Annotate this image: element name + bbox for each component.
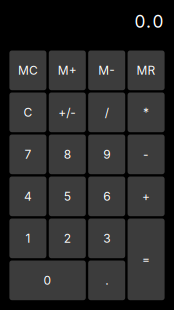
button[interactable]: Plus minus (49, 92, 86, 132)
button[interactable]: 0 (9, 260, 86, 300)
staticText: MC (18, 63, 38, 78)
staticText: = (142, 252, 150, 267)
button[interactable]: 6 (88, 176, 125, 216)
staticText: 5 (64, 189, 71, 204)
staticText: 3 (103, 231, 110, 246)
button[interactable]: 1 (9, 218, 46, 258)
staticText: +/- (58, 105, 76, 120)
button[interactable]: 4 (9, 176, 46, 216)
button[interactable]: Divide (88, 92, 125, 132)
button[interactable]: 3 (88, 218, 125, 258)
staticText: 6 (103, 189, 110, 204)
staticText: . (105, 273, 108, 288)
staticText: 8 (64, 147, 71, 162)
button[interactable]: Memory add (49, 50, 86, 90)
staticText: M- (98, 63, 115, 78)
staticText: 4 (24, 189, 32, 204)
staticText: 1 (25, 231, 30, 246)
button[interactable]: Equals (128, 218, 165, 300)
button[interactable]: Memory clear (9, 50, 46, 90)
staticText: C (23, 105, 32, 120)
button[interactable]: 5 (49, 176, 86, 216)
button[interactable]: 2 (49, 218, 86, 258)
staticText: 2 (64, 231, 71, 246)
button[interactable]: 7 (9, 134, 46, 174)
button[interactable]: Decimal point (88, 260, 125, 300)
staticText: 0 (44, 273, 52, 288)
staticText: MR (137, 63, 156, 78)
staticText: + (142, 189, 150, 204)
button[interactable]: Minus (128, 134, 165, 174)
button[interactable]: Memory recall (128, 50, 165, 90)
button[interactable]: 9 (88, 134, 125, 174)
staticText: / (105, 105, 109, 120)
staticText: 9 (103, 147, 110, 162)
button[interactable]: Plus (128, 176, 165, 216)
button[interactable]: 8 (49, 134, 86, 174)
staticText: 7 (24, 147, 31, 162)
staticText: - (143, 147, 149, 162)
staticText: * (143, 105, 149, 120)
staticText: M+ (58, 63, 77, 78)
button[interactable]: Memory subtract (88, 50, 125, 90)
button[interactable]: Clear (9, 92, 46, 132)
button[interactable]: Multiply (128, 92, 165, 132)
staticText: 0.0 (135, 11, 164, 32)
